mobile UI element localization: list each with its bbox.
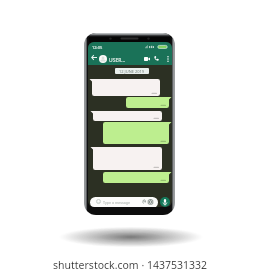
staticText: Type a message	[103, 200, 130, 205]
staticText: USER...	[109, 57, 126, 64]
staticText: shutterstock.com · 1437531332	[53, 258, 208, 272]
button[interactable]: Back	[89, 53, 98, 62]
button[interactable]: Type a message	[90, 197, 158, 207]
button[interactable]: More options	[163, 54, 172, 63]
button[interactable]: USER...	[109, 57, 126, 64]
button[interactable]: Record voice message	[160, 197, 170, 207]
button[interactable]: Video call	[142, 54, 151, 63]
button[interactable]: Contact photo	[99, 55, 107, 63]
button[interactable]: Call	[152, 54, 161, 63]
staticText: 12:05	[92, 45, 103, 50]
staticText: 12 JUNE 2019	[119, 69, 145, 74]
